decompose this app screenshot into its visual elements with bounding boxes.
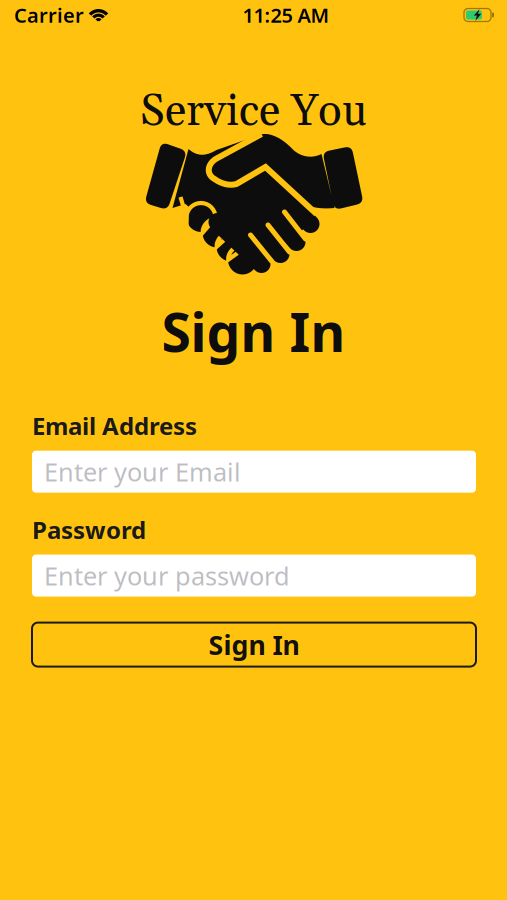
button[interactable]: Sign In <box>32 623 476 667</box>
staticText: Carrier <box>14 2 84 28</box>
staticText: Email Address <box>32 410 197 442</box>
staticText: Enter your Email <box>44 455 241 488</box>
staticText: Sign In <box>161 296 345 367</box>
staticText: Service You <box>140 84 367 140</box>
staticText: Enter your password <box>44 559 290 592</box>
staticText: Sign In <box>208 627 299 662</box>
staticText: 11:25 AM <box>242 2 329 28</box>
staticText: Password <box>32 514 146 546</box>
